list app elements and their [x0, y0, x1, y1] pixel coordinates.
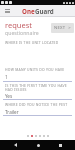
staticText: WHERE IS THE UNIT LOCATED: [5, 40, 59, 45]
staticText: Yes: [5, 93, 13, 99]
staticText: request: [5, 20, 32, 30]
staticText: HOW MANY UNITS DO YOU HAVE: [5, 67, 65, 72]
button[interactable]: Menu: [5, 9, 10, 13]
staticText: Guard: [35, 7, 54, 15]
button[interactable]: NEXT >: [51, 23, 74, 33]
button[interactable]: Recents: [53, 140, 67, 150]
staticText: NEXT >: [54, 25, 71, 31]
button[interactable]: Home: [31, 140, 45, 150]
staticText: One: [22, 7, 35, 15]
staticText: WHERE DID YOU NOTICE THE PEST: [5, 102, 68, 107]
staticText: questionnaire: [5, 29, 39, 36]
staticText: IS THIS THE FIRST TIME YOU HAVE: [5, 83, 67, 88]
staticText: HAD ISSUES: [5, 87, 27, 92]
button[interactable]: Back: [8, 140, 22, 150]
staticText: Trailer: [5, 109, 19, 115]
staticText: 1: [5, 74, 8, 80]
